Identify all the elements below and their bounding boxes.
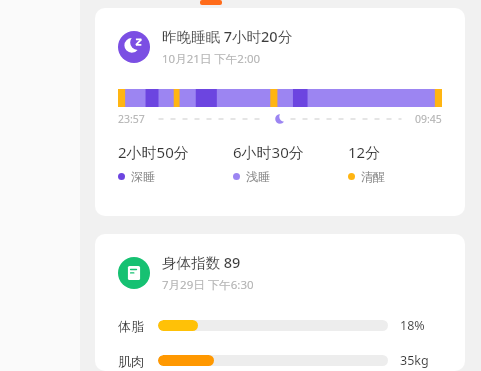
staticText: 18% — [400, 317, 442, 334]
staticText: 10月21日 下午2:00 — [162, 51, 261, 67]
button[interactable]: 体脂 — [118, 317, 442, 334]
button[interactable] — [200, 0, 222, 5]
staticText: 2小时50分 — [118, 142, 189, 162]
staticText: 清醒 — [361, 169, 385, 184]
staticText: 6小时30分 — [233, 142, 304, 162]
staticText: 昨晚睡眠 7小时20分 — [162, 26, 293, 46]
button[interactable]: 2小时50分 — [118, 142, 233, 184]
staticText: 身体指数 89 — [162, 252, 241, 272]
other: Body index — [118, 257, 150, 289]
button[interactable]: 6小时30分 — [233, 142, 348, 184]
staticText: 深睡 — [131, 169, 155, 184]
button[interactable]: 12分 — [348, 142, 442, 184]
staticText: 09:45 — [415, 112, 442, 126]
staticText: 7月29日 下午6:30 — [162, 277, 254, 293]
other: Sleep — [118, 31, 150, 63]
staticText: 23:57 — [118, 112, 145, 126]
button[interactable]: Sleep — [95, 8, 465, 216]
staticText: 35kg — [400, 352, 442, 369]
staticText: 浅睡 — [246, 169, 270, 184]
staticText: 12分 — [348, 142, 381, 162]
staticText: 肌肉 — [118, 353, 152, 369]
button[interactable]: Body index — [95, 234, 465, 371]
staticText: 体脂 — [118, 318, 152, 334]
button[interactable]: 肌肉 — [118, 352, 442, 369]
